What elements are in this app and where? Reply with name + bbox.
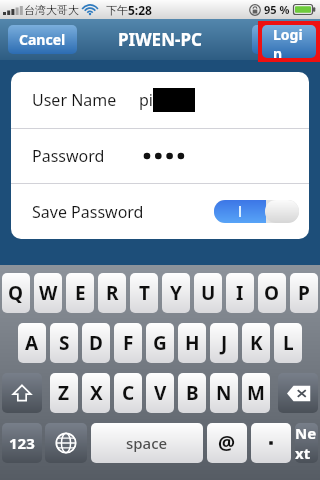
button[interactable]: N <box>210 373 238 413</box>
button[interactable]: M <box>242 373 270 413</box>
button[interactable]: P <box>290 273 318 313</box>
staticText: P <box>298 280 310 306</box>
button[interactable]: Q <box>2 273 30 313</box>
staticText: X <box>90 380 103 406</box>
staticText: N <box>216 380 232 406</box>
staticText: space <box>126 433 168 453</box>
button[interactable]: W <box>34 273 62 313</box>
button[interactable]: Next <box>295 423 318 463</box>
staticText: D <box>89 330 103 356</box>
staticText: Q <box>8 280 24 306</box>
staticText: W <box>39 280 58 306</box>
staticText: 下午 <box>106 3 128 17</box>
staticText: Login <box>273 25 305 58</box>
button[interactable]: A <box>18 323 46 363</box>
button[interactable]: E <box>66 273 94 313</box>
staticText: G <box>153 330 167 356</box>
staticText: M <box>247 380 265 406</box>
button[interactable]: O <box>258 273 286 313</box>
button[interactable]: L <box>274 323 302 363</box>
staticText: Y <box>170 280 182 306</box>
staticText: H <box>185 330 200 356</box>
staticText: 95 % <box>264 2 290 17</box>
button[interactable]: space <box>91 423 203 463</box>
staticText: Next <box>295 423 318 463</box>
button[interactable]: X <box>82 373 110 413</box>
button[interactable]: Save Password <box>11 184 309 239</box>
staticText: E <box>75 280 86 306</box>
staticText: Password <box>32 145 105 167</box>
button[interactable]: I <box>226 273 254 313</box>
button[interactable]: Period <box>251 423 291 463</box>
staticText: J <box>221 330 228 356</box>
staticText: B <box>186 380 199 406</box>
button[interactable]: Save Password toggle, on <box>214 200 299 223</box>
staticText: 5:28 <box>128 2 152 18</box>
staticText: A <box>25 330 39 356</box>
staticText: @ <box>218 430 236 456</box>
button[interactable]: Login <box>262 25 316 58</box>
button[interactable]: C <box>114 373 142 413</box>
button[interactable]: R <box>98 273 126 313</box>
button[interactable]: K <box>242 323 270 363</box>
staticText: K <box>250 330 263 356</box>
button[interactable]: Backspace <box>278 373 318 413</box>
staticText: I <box>236 280 244 306</box>
button[interactable]: F <box>114 323 142 363</box>
button[interactable]: H <box>178 323 206 363</box>
staticText: O <box>264 280 280 306</box>
staticText: Z <box>58 380 70 406</box>
button[interactable]: @ <box>207 423 247 463</box>
button[interactable]: Shift <box>2 373 42 413</box>
button[interactable]: Login <box>252 25 313 54</box>
button[interactable]: Switch keyboard <box>45 423 87 463</box>
staticText: Cancel <box>19 30 66 49</box>
button[interactable]: J <box>210 323 238 363</box>
staticText: C <box>122 380 135 406</box>
button[interactable]: G <box>146 323 174 363</box>
button[interactable]: Cancel <box>8 25 77 54</box>
button[interactable]: Y <box>162 273 190 313</box>
button[interactable]: Z <box>50 373 78 413</box>
button[interactable]: Password <box>11 129 309 183</box>
staticText: Save Password <box>32 201 144 223</box>
button[interactable]: 123 <box>2 423 42 463</box>
staticText: R <box>106 280 119 306</box>
button[interactable]: V <box>146 373 174 413</box>
button[interactable]: U <box>194 273 222 313</box>
staticText: PIWEN-PC <box>118 28 202 51</box>
staticText: U <box>201 280 216 306</box>
button[interactable]: S <box>50 323 78 363</box>
staticText: F <box>123 330 134 356</box>
button[interactable]: T <box>130 273 158 313</box>
staticText: V <box>154 380 167 406</box>
staticText: L <box>283 330 294 356</box>
staticText: User Name <box>32 89 117 111</box>
staticText: pi <box>139 89 153 111</box>
staticText: T <box>139 280 150 306</box>
button[interactable]: B <box>178 373 206 413</box>
staticText: Login <box>263 30 302 49</box>
button[interactable]: User Name <box>11 72 309 128</box>
staticText: 123 <box>9 433 35 453</box>
staticText: S <box>59 330 70 356</box>
button[interactable]: D <box>82 323 110 363</box>
staticText: 台湾大哥大 <box>24 3 79 17</box>
